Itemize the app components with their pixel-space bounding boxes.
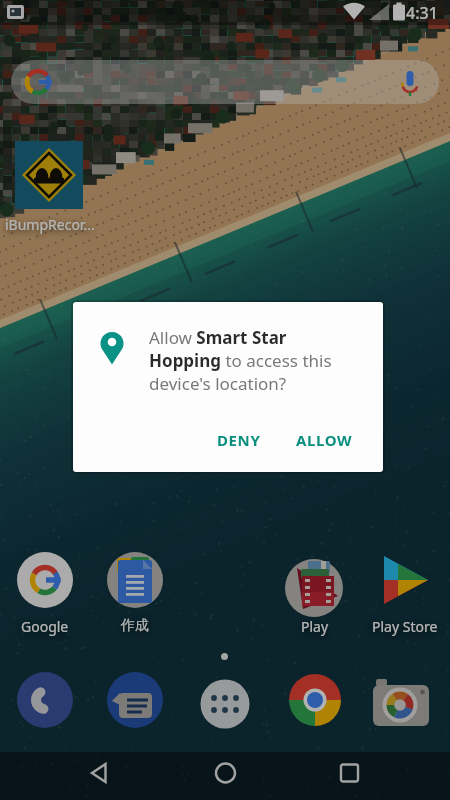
staticText: DENY xyxy=(217,430,261,450)
staticText: ALLOW xyxy=(296,430,353,450)
button[interactable] xyxy=(307,752,392,800)
button[interactable] xyxy=(195,670,255,730)
staticText: Play Store xyxy=(372,617,438,636)
button[interactable] xyxy=(285,670,345,730)
button[interactable] xyxy=(375,670,435,730)
button[interactable] xyxy=(57,752,142,800)
button[interactable] xyxy=(375,550,435,610)
button[interactable] xyxy=(105,670,165,730)
staticText: 作成 xyxy=(121,617,149,635)
button[interactable]: DENY xyxy=(199,420,279,460)
staticText: iBumpRecor... xyxy=(5,215,109,234)
button[interactable] xyxy=(105,550,165,610)
button[interactable] xyxy=(15,670,75,730)
staticText: 4:31 xyxy=(406,2,438,24)
button[interactable]: ALLOW xyxy=(281,420,367,460)
button[interactable] xyxy=(11,60,439,104)
staticText: Allow Smart Star xyxy=(149,326,287,349)
staticText: device's location? xyxy=(149,372,287,395)
button[interactable] xyxy=(15,141,83,209)
button[interactable] xyxy=(15,550,75,610)
staticText: Play xyxy=(301,617,329,636)
button[interactable] xyxy=(285,550,345,610)
staticText: Google xyxy=(21,617,69,636)
staticText: Hopping to access this xyxy=(149,349,332,372)
button[interactable] xyxy=(183,752,268,800)
